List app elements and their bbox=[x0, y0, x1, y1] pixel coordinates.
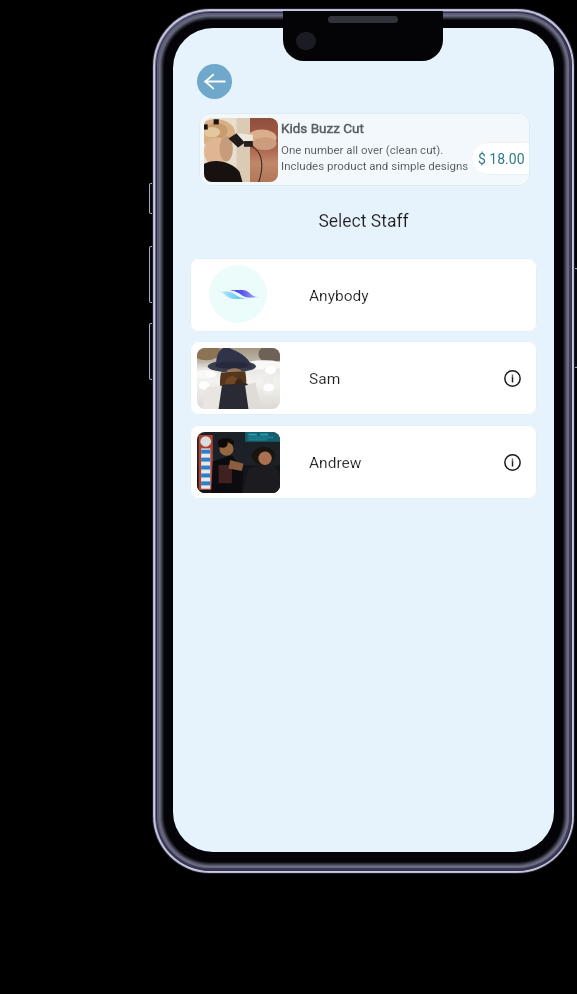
staticText: Includes product and simple designs bbox=[281, 159, 469, 172]
staticText: Sam bbox=[309, 370, 341, 388]
staticText: Andrew bbox=[309, 454, 362, 472]
button[interactable]: Anybody bbox=[190, 258, 537, 332]
button[interactable]: Kids Buzz Cut bbox=[199, 113, 530, 186]
staticText: $ 18.00 bbox=[478, 151, 525, 167]
button[interactable]: Back bbox=[197, 64, 232, 99]
staticText: Anybody bbox=[309, 287, 369, 305]
button[interactable]: $ 18.00 bbox=[471, 142, 530, 175]
button[interactable]: Andrew bbox=[190, 425, 537, 499]
button[interactable]: Info bbox=[497, 341, 527, 415]
staticText: One number all over (clean cut). bbox=[281, 143, 444, 156]
staticText: Select Staff bbox=[173, 211, 554, 232]
button[interactable]: Info bbox=[497, 425, 527, 499]
staticText: Kids Buzz Cut bbox=[281, 120, 364, 136]
button[interactable]: Sam bbox=[190, 341, 537, 415]
